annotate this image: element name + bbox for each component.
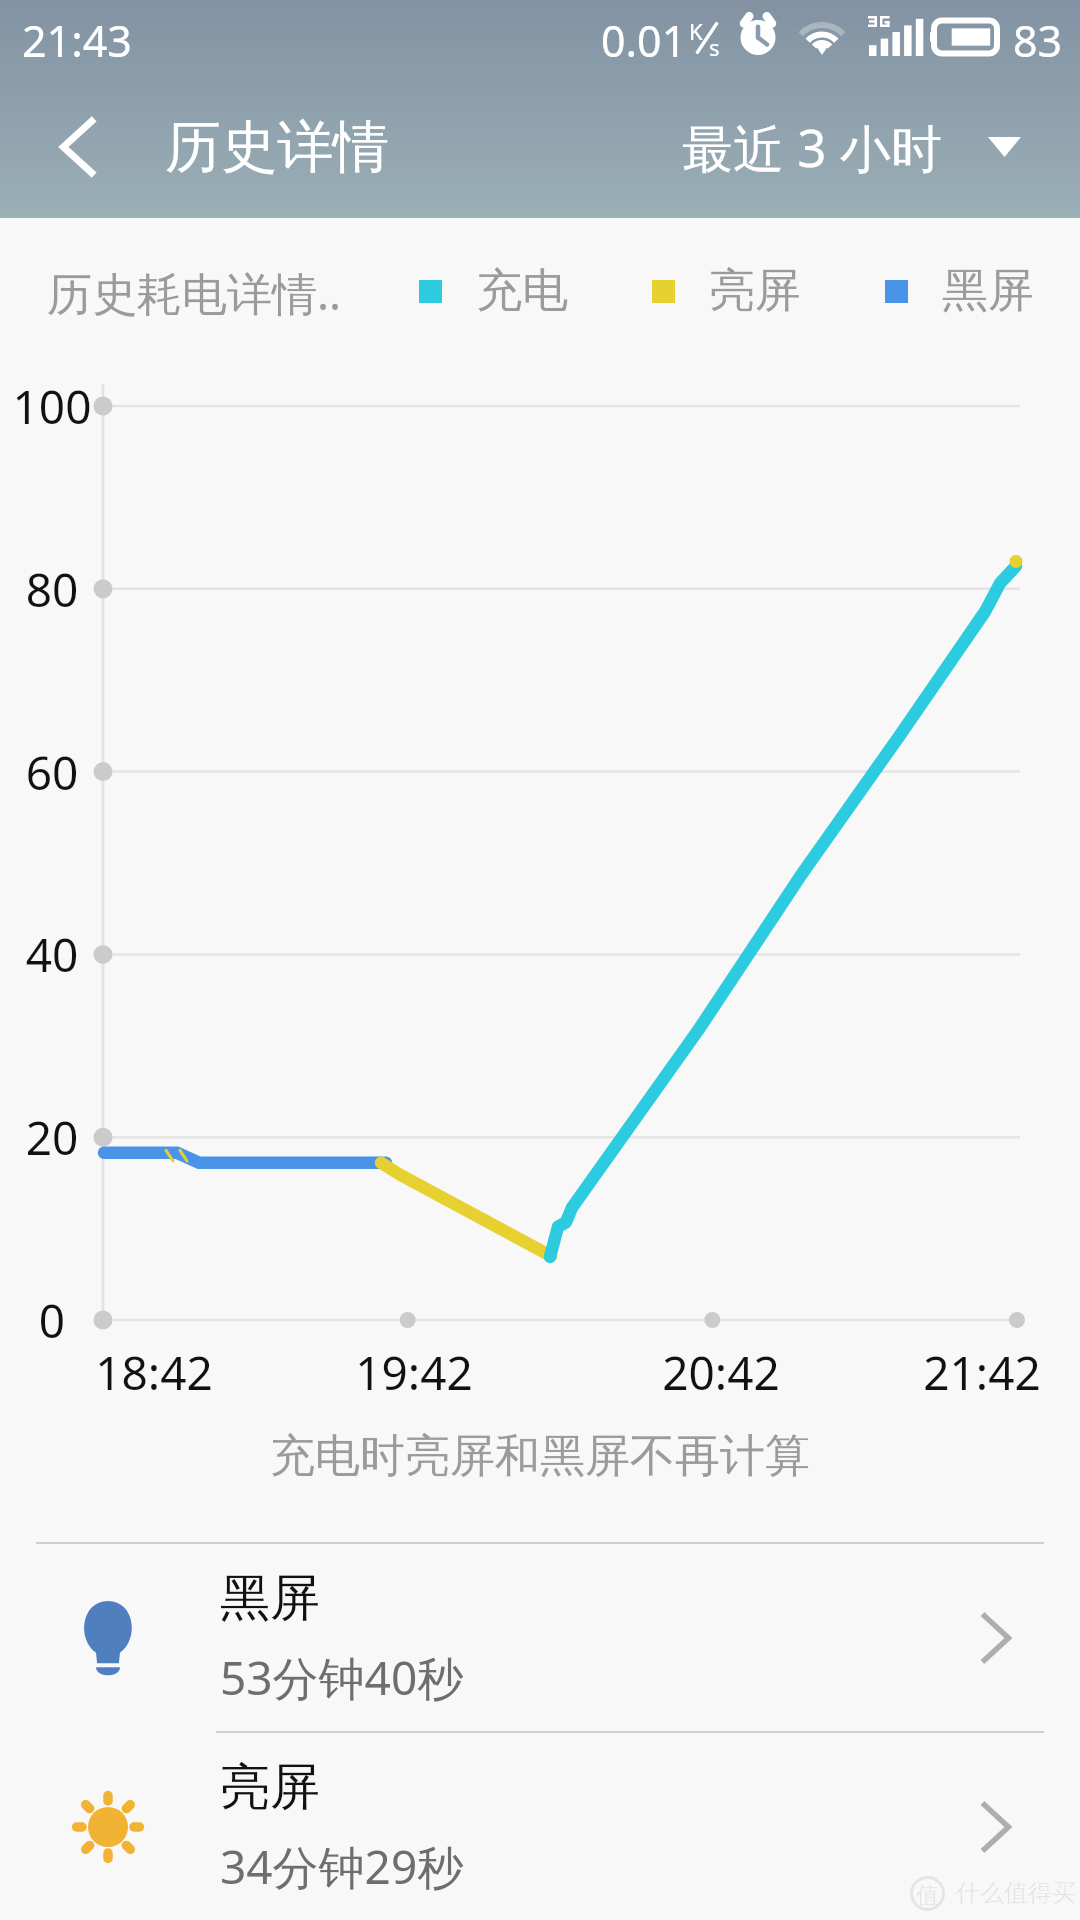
staticText: 20:42 bbox=[611, 1341, 831, 1404]
staticText: 充电 bbox=[476, 262, 568, 320]
button[interactable]: Open 黑屏 details bbox=[950, 1544, 1080, 1732]
staticText: 黑屏 bbox=[220, 1567, 320, 1630]
staticText: 黑屏 bbox=[942, 262, 1034, 320]
staticText: 0.01 bbox=[601, 11, 687, 70]
staticText: 值 bbox=[916, 1881, 939, 1910]
staticText: 100 bbox=[0, 375, 152, 438]
staticText: 充电时亮屏和黑屏不再计算 bbox=[270, 1428, 810, 1485]
staticText: 历史详情 bbox=[165, 112, 389, 183]
button[interactable]: Open 亮屏 details bbox=[950, 1733, 1080, 1920]
staticText: 83 bbox=[1013, 11, 1063, 70]
staticText: 80 bbox=[0, 558, 152, 621]
staticText: 21:43 bbox=[22, 11, 132, 70]
staticText: 34分钟29秒 bbox=[220, 1835, 464, 1898]
staticText: 21:42 bbox=[872, 1341, 1080, 1404]
staticText: 18:42 bbox=[44, 1341, 264, 1404]
button[interactable]: 亮屏 bbox=[0, 1733, 1080, 1920]
staticText: 60 bbox=[0, 741, 152, 804]
button[interactable]: 最近 3 小时 bbox=[682, 99, 1021, 195]
staticText: 亮屏 bbox=[709, 262, 801, 320]
staticText: 历史耗电详情.. bbox=[47, 262, 342, 323]
staticText: 20 bbox=[0, 1106, 152, 1169]
button[interactable]: 黑屏 bbox=[0, 1544, 1080, 1732]
staticText: K bbox=[689, 16, 703, 46]
staticText: 53分钟40秒 bbox=[220, 1646, 464, 1709]
button[interactable]: Back bbox=[29, 99, 125, 195]
staticText: s bbox=[709, 32, 720, 62]
staticText: 40 bbox=[0, 923, 152, 986]
staticText: 什么值得买 bbox=[956, 1878, 1076, 1908]
staticText: 最近 3 小时 bbox=[682, 112, 942, 182]
staticText: 亮屏 bbox=[220, 1756, 320, 1819]
staticText: 0 bbox=[0, 1289, 152, 1352]
staticText: 19:42 bbox=[304, 1341, 524, 1404]
